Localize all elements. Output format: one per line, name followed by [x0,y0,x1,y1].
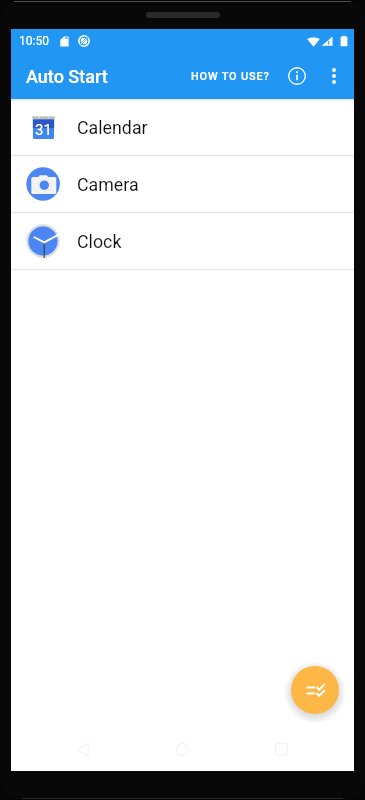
button[interactable]: 31 [11,99,354,155]
button[interactable]: Clock [11,213,354,269]
button[interactable]: More options [318,60,350,92]
staticText: 10:50 [19,34,49,48]
staticText: Camera [77,174,139,195]
button[interactable]: Camera [11,156,354,212]
button[interactable]: Select apps [291,666,339,714]
staticText: Auto Start [26,66,108,87]
staticText: Calendar [77,117,148,138]
button[interactable]: HOW TO USE? [183,61,278,92]
staticText: 31 [35,121,52,139]
staticText: HOW TO USE? [191,70,270,83]
button[interactable]: Info [281,60,313,92]
staticText: Clock [77,231,122,252]
